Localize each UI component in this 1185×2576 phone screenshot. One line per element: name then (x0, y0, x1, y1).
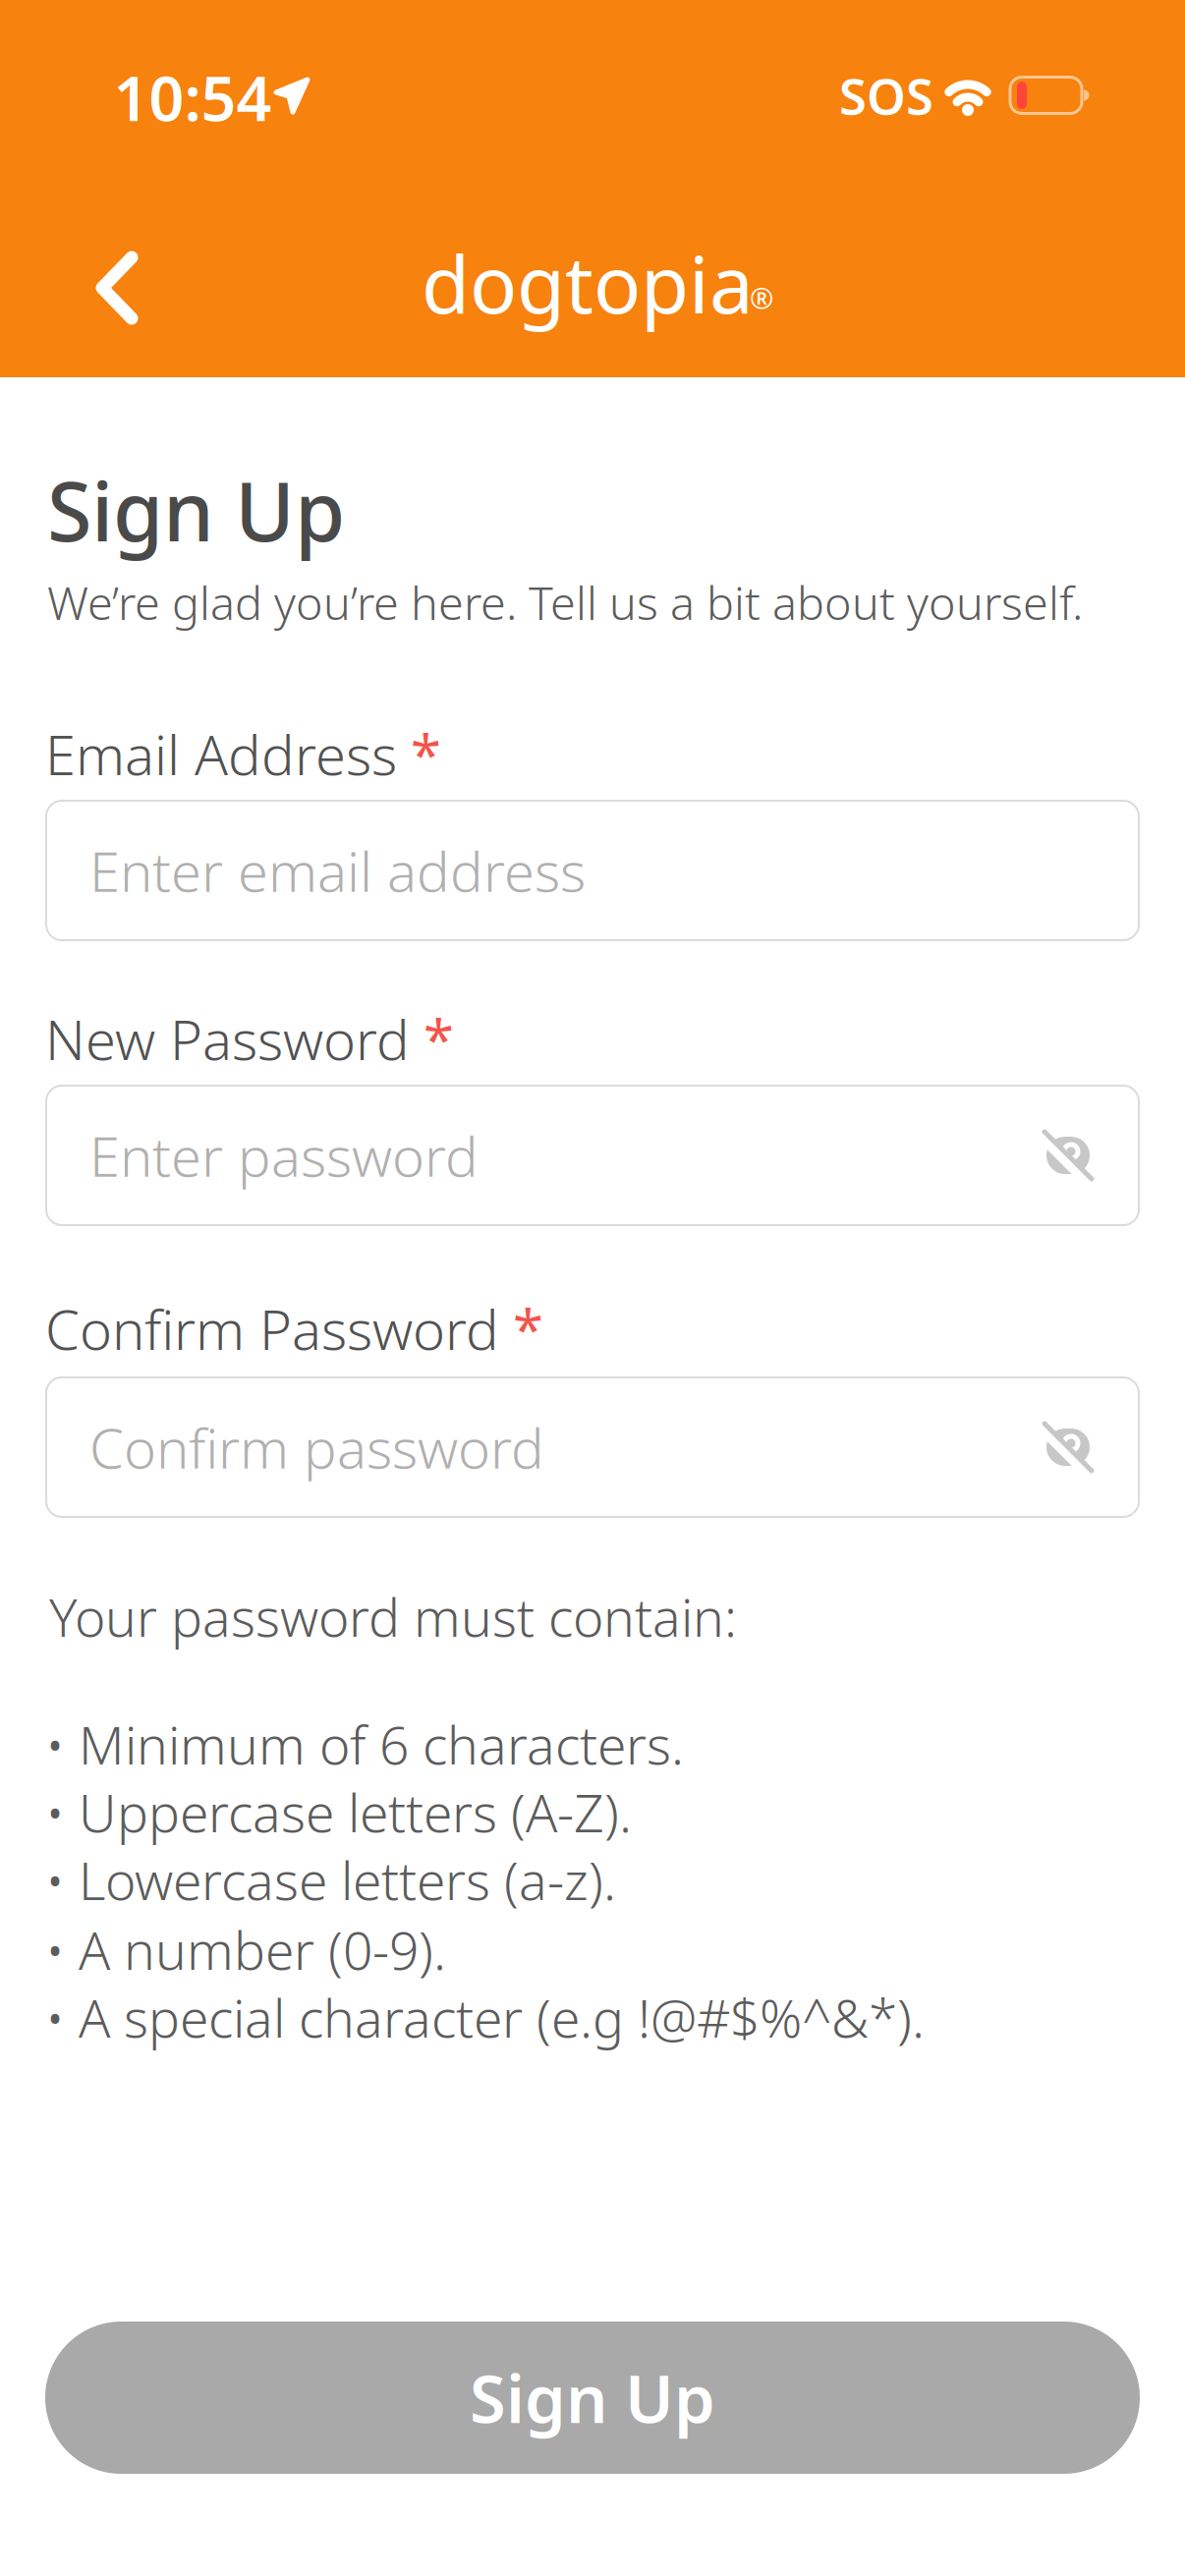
button[interactable]: Show password (1023, 1110, 1113, 1201)
staticText: Sign Up (47, 456, 345, 564)
staticText: Confirm password (89, 1411, 544, 1484)
staticText: • Minimum of 6 characters. (45, 1709, 684, 1779)
staticText: SOS (839, 62, 933, 128)
staticText: Sign Up (470, 2354, 715, 2441)
button[interactable]: Show password (1023, 1402, 1113, 1492)
staticText: Enter email address (89, 834, 586, 907)
button[interactable]: Confirm password (46, 1377, 1139, 1517)
staticText: Enter password (89, 1119, 479, 1192)
staticText: Your password must contain: (49, 1582, 737, 1651)
staticText: * (513, 1292, 543, 1365)
button[interactable]: Enter email address (46, 801, 1139, 940)
button[interactable]: Sign Up (45, 2322, 1140, 2474)
button[interactable]: Back (70, 223, 164, 353)
staticText: Email Address (45, 717, 397, 790)
staticText: dogtopia (422, 231, 754, 335)
staticText: Confirm Password (45, 1292, 499, 1365)
staticText: • A number (0-9). (45, 1915, 446, 1984)
staticText: • Lowercase letters (a-z). (45, 1845, 616, 1915)
button[interactable]: Enter password (46, 1086, 1139, 1225)
staticText: • A special character (e.g !@#$%^&*). (45, 1983, 925, 2052)
staticText: We’re glad you’re here. Tell us a bit ab… (47, 572, 1083, 633)
staticText: • Uppercase letters (A-Z). (45, 1777, 632, 1847)
staticText: * (411, 717, 441, 790)
staticText: 10:54 (113, 56, 272, 138)
staticText: New Password (45, 1002, 410, 1075)
staticText: ® (750, 279, 773, 317)
staticText: * (423, 1002, 454, 1075)
